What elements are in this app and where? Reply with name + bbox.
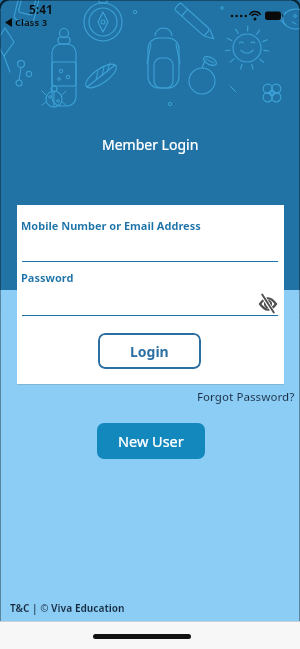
button[interactable]: Login: [98, 333, 201, 369]
button[interactable]: T&C | © Viva Education: [10, 601, 125, 615]
staticText: Member Login: [102, 135, 199, 154]
button[interactable]: Forgot Password?: [197, 389, 295, 405]
staticText: Password: [21, 270, 74, 285]
staticText: Class 3: [15, 16, 48, 29]
staticText: 5:41: [29, 1, 53, 17]
button[interactable]: New User: [97, 423, 205, 459]
button[interactable]: Class 3: [5, 16, 48, 29]
staticText: Forgot Password?: [197, 389, 295, 405]
staticText: T&C | © Viva Education: [10, 601, 125, 615]
staticText: Login: [130, 342, 169, 361]
staticText: Mobile Number or Email Address: [21, 218, 201, 233]
button[interactable]: [259, 296, 277, 312]
staticText: New User: [118, 431, 184, 451]
